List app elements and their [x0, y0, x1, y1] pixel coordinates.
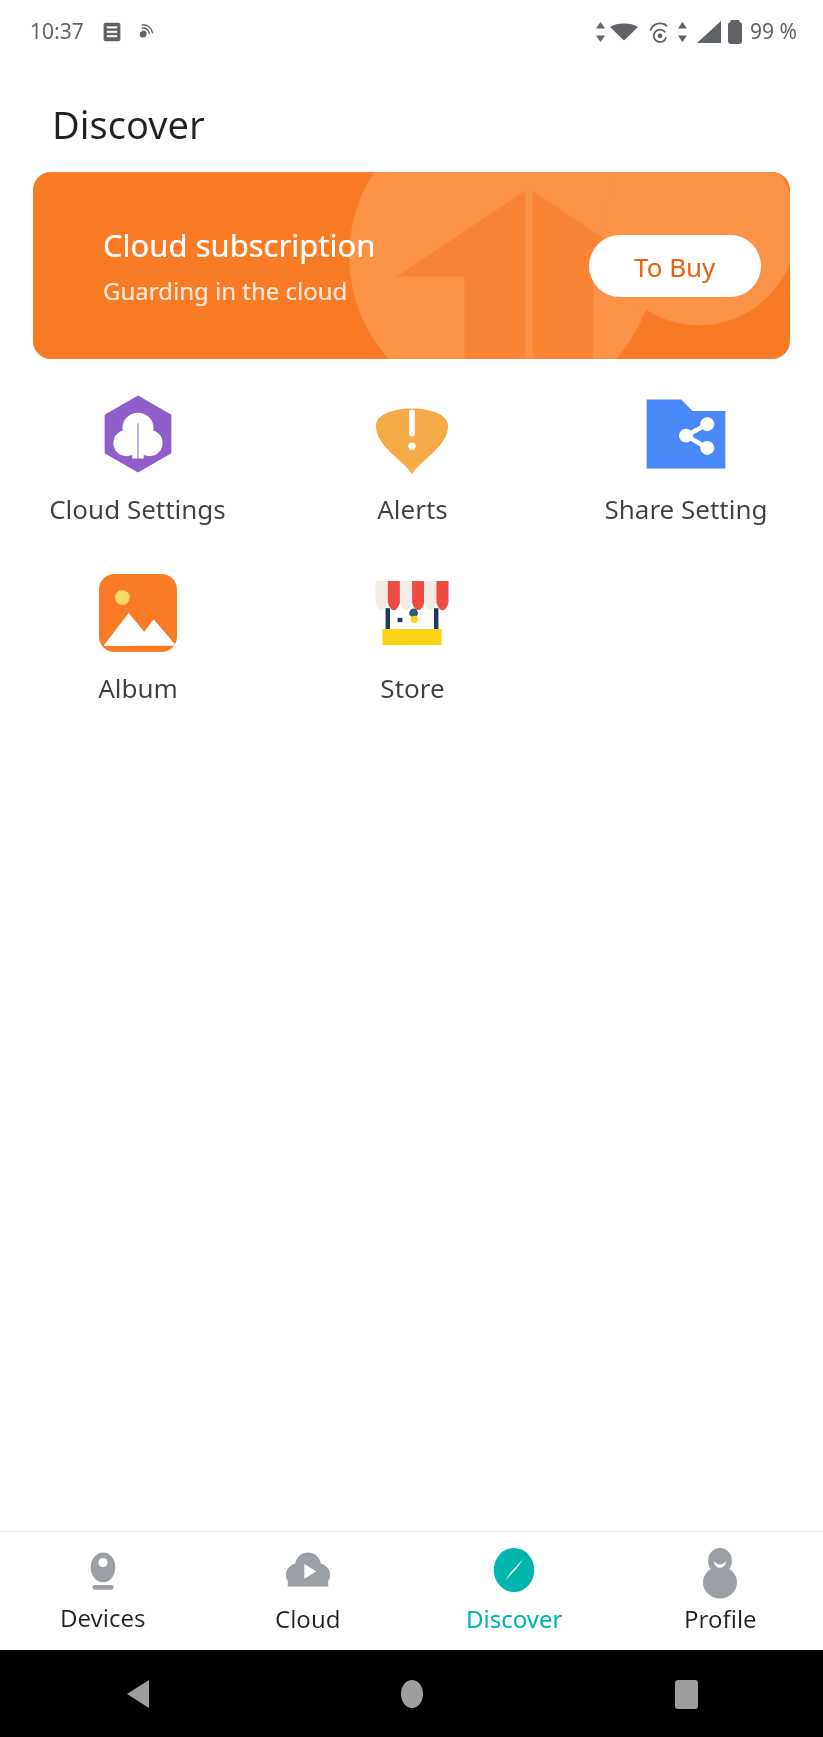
- staticText: Album: [98, 670, 178, 705]
- staticText: 10:37: [30, 17, 84, 46]
- staticText: Store: [380, 670, 445, 705]
- staticText: Alerts: [377, 491, 448, 526]
- staticText: Guarding in the cloud: [103, 274, 348, 307]
- staticText: Discover: [52, 98, 205, 150]
- staticText: To Buy: [634, 249, 716, 284]
- button[interactable]: Home: [389, 1671, 435, 1717]
- staticText: Profile: [684, 1602, 757, 1635]
- button[interactable]: Back: [115, 1671, 161, 1717]
- staticText: Cloud: [275, 1602, 341, 1635]
- button[interactable]: Profile: [617, 1532, 823, 1650]
- staticText: Share Setting: [604, 491, 768, 526]
- button[interactable]: Cloud subscription: [33, 172, 790, 359]
- button[interactable]: Recents: [663, 1671, 709, 1717]
- button[interactable]: Cloud Settings: [0, 385, 275, 532]
- staticText: Discover: [466, 1602, 563, 1635]
- button[interactable]: Cloud: [205, 1532, 411, 1650]
- button[interactable]: Devices: [0, 1532, 205, 1650]
- button[interactable]: Alerts: [275, 385, 549, 532]
- staticText: 99 %: [750, 17, 797, 46]
- button[interactable]: Album: [0, 564, 275, 711]
- staticText: Cloud subscription: [103, 224, 376, 266]
- staticText: Devices: [60, 1601, 146, 1634]
- button[interactable]: To Buy: [589, 235, 761, 297]
- button[interactable]: Share Setting: [549, 385, 823, 532]
- button[interactable]: Discover: [411, 1532, 617, 1650]
- button[interactable]: Store: [275, 564, 549, 711]
- staticText: Cloud Settings: [49, 491, 226, 526]
